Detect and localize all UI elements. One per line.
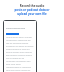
staticText: Lorem ipsum dolor sit amet consectetur a…	[6, 36, 34, 72]
staticText: upload your own file	[0, 12, 64, 16]
staticText: Record the audio	[0, 4, 64, 8]
staticText: posts or podcast data or	[0, 8, 64, 12]
staticText: Some podcast title	[6, 27, 26, 30]
